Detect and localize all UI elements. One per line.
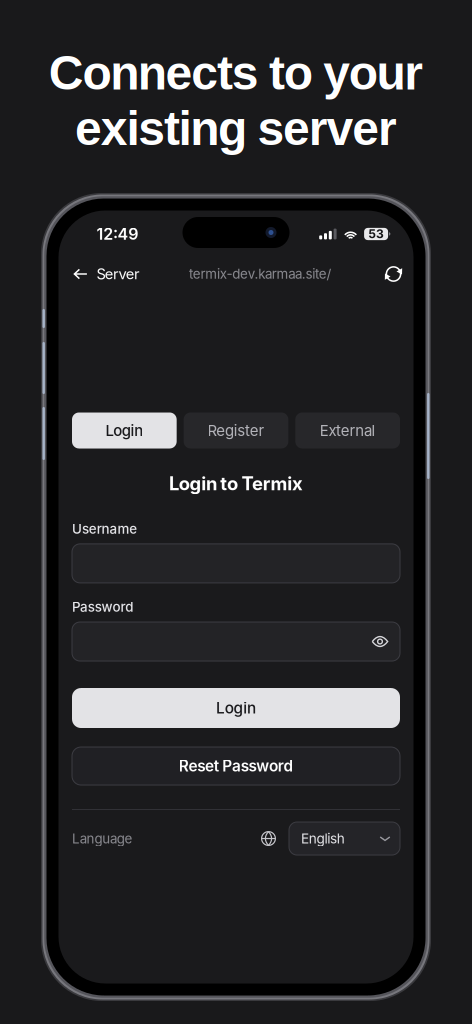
staticText: Reset Password <box>179 757 293 775</box>
button[interactable]: Reset Password <box>72 747 400 785</box>
staticText: Login <box>216 699 256 717</box>
staticText: existing server <box>75 102 397 155</box>
button[interactable]: Server <box>72 259 141 289</box>
button[interactable]: Login <box>72 688 400 728</box>
staticText: Connects to your <box>49 46 423 100</box>
staticText: 12:49 <box>96 224 138 244</box>
button[interactable]: English <box>289 822 400 855</box>
button[interactable]: Register <box>184 412 288 448</box>
staticText: Language <box>72 830 133 847</box>
staticText: English <box>301 830 345 847</box>
button[interactable]: Show password <box>367 626 393 656</box>
staticText: External <box>320 421 376 440</box>
staticText: Login <box>105 421 143 440</box>
staticText: Login to Termix <box>169 472 303 495</box>
staticText: Password <box>72 599 133 615</box>
button[interactable]: Refresh <box>379 260 407 288</box>
button[interactable]: External <box>295 412 400 448</box>
staticText: 53 <box>368 227 384 241</box>
button[interactable]: Login <box>72 412 177 448</box>
staticText: Username <box>72 521 137 537</box>
staticText: termix-dev.karmaa.site/ <box>189 266 331 282</box>
staticText: Server <box>96 265 140 283</box>
staticText: Register <box>207 421 264 440</box>
